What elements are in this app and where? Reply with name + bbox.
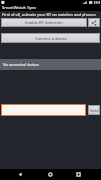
staticText: No connected devices (3, 62, 39, 67)
staticText: First of all, activate your BT on watche… (2, 12, 96, 17)
staticText: Send (90, 108, 99, 113)
button[interactable]: Recent apps (70, 169, 87, 180)
button[interactable]: Enable BT detection (1, 18, 87, 27)
button[interactable]: Back (11, 169, 29, 180)
button[interactable]: No connected devices (0, 59, 101, 70)
staticText: Enable BT detection (25, 20, 63, 25)
button[interactable]: Share (88, 18, 100, 27)
staticText: Connect a device (35, 36, 67, 41)
button[interactable]: Send (88, 105, 100, 115)
button[interactable]: Connect a device (1, 33, 100, 43)
button[interactable]: Home (41, 169, 59, 180)
staticText: SmartWatch Sync (2, 5, 37, 11)
